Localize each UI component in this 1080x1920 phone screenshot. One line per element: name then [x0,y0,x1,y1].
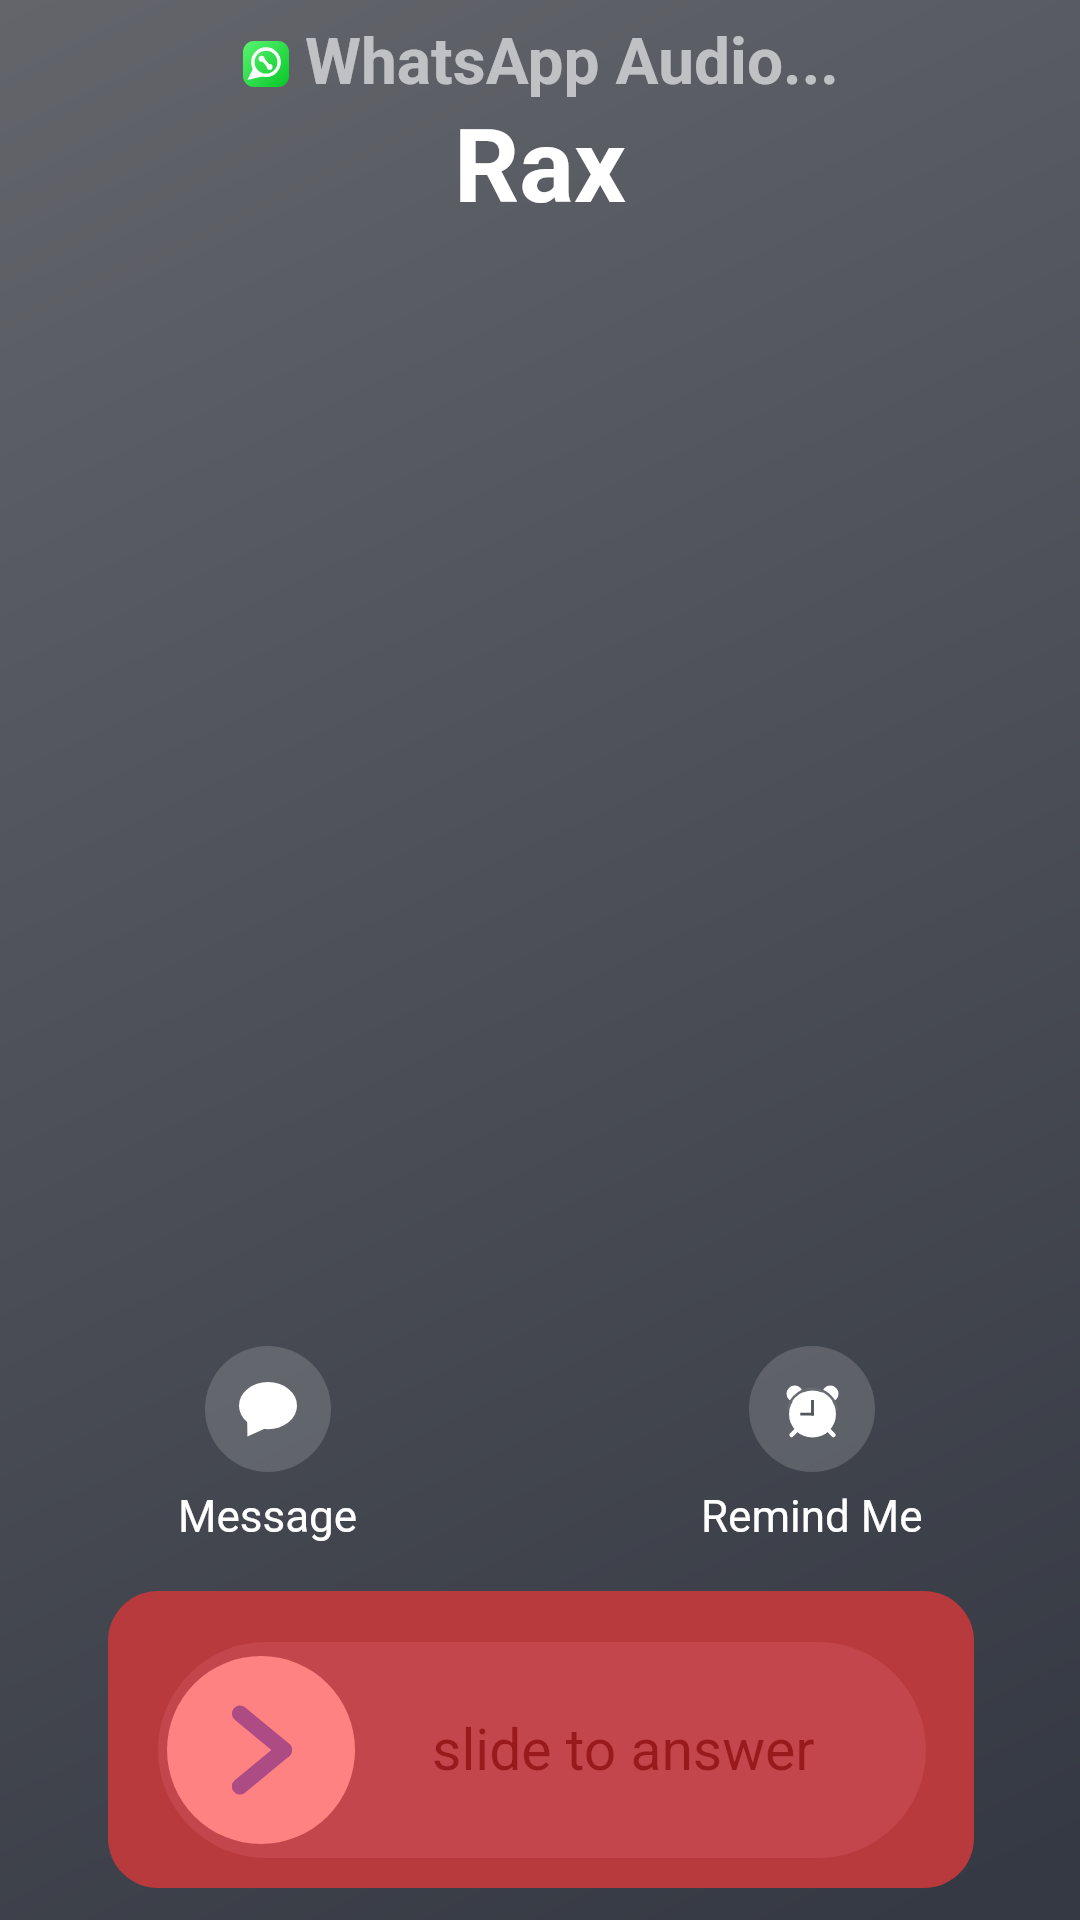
button[interactable]: Remind Me [642,1346,982,1543]
staticText: WhatsApp Audio... [305,25,839,100]
button[interactable]: Answer call [108,1591,974,1888]
staticText: Rax [454,107,626,227]
button[interactable]: Message [98,1346,438,1543]
staticText: Remind Me [701,1491,923,1543]
button[interactable]: Slide to answer [167,1656,355,1844]
other: WhatsApp [243,41,289,87]
staticText: slide to answer [432,1717,815,1784]
staticText: Message [178,1491,358,1543]
